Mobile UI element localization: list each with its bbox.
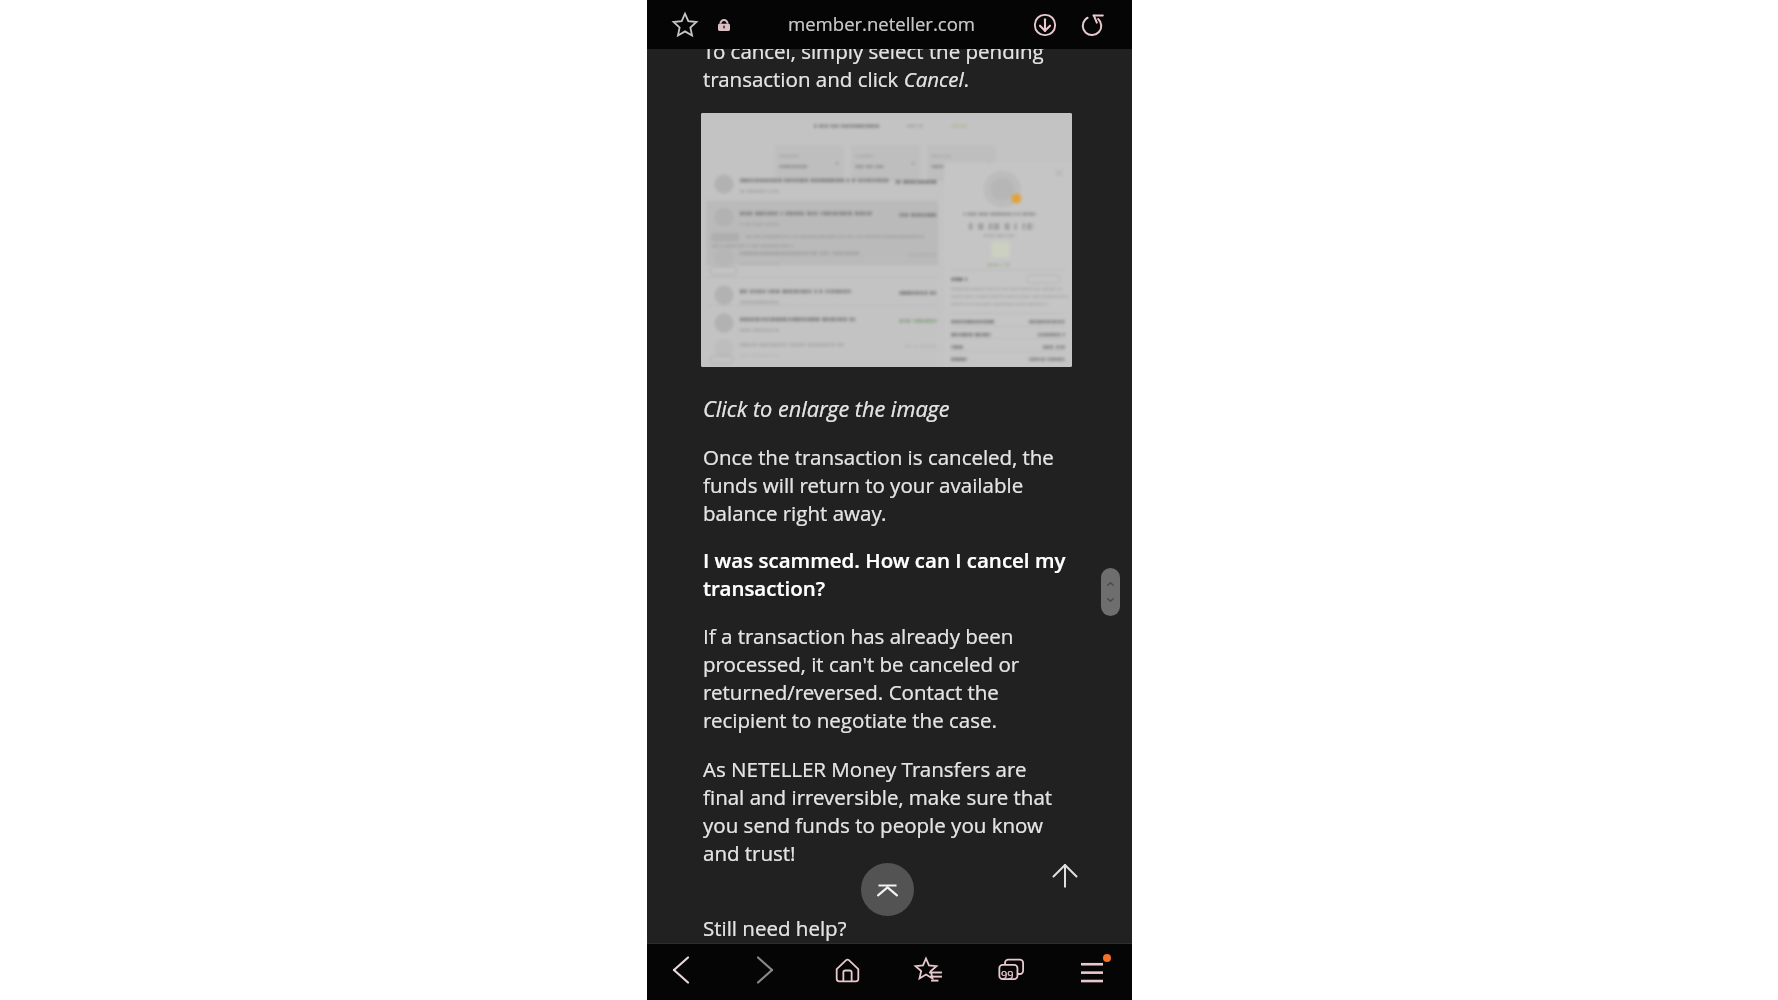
staticText: As NETELLER Money Transfers are final an…: [703, 755, 1053, 867]
staticText: Once the transaction is canceled, the fu…: [703, 443, 1054, 527]
staticText: 99: [1001, 967, 1014, 982]
staticText: Still need help?: [703, 914, 847, 942]
button[interactable]: Scroll to top: [1047, 858, 1083, 894]
button[interactable]: Reload: [1076, 9, 1108, 41]
staticText: I was scammed. How can I cancel my trans…: [703, 546, 1066, 602]
button[interactable]: Site security: [711, 12, 737, 38]
staticText: To cancel, simply select the pending tra…: [703, 37, 1044, 93]
button[interactable]: Back: [654, 943, 708, 997]
button[interactable]: Bookmarks: [901, 943, 955, 997]
button[interactable]: Home: [820, 943, 874, 997]
staticText: If a transaction has already been proces…: [703, 622, 1020, 734]
staticText: Click to enlarge the image: [703, 394, 950, 424]
button[interactable]: Screenshot of pending transaction: [701, 113, 1072, 367]
button[interactable]: Menu: [1065, 943, 1119, 997]
button[interactable]: Tabs: [984, 943, 1038, 997]
button[interactable]: Bookmark: [668, 8, 701, 41]
staticText: member.neteller.com: [788, 11, 976, 36]
button[interactable]: Download: [1029, 9, 1061, 41]
button[interactable]: Scrollbar: [1101, 568, 1120, 616]
button[interactable]: Collapse: [861, 863, 914, 916]
button[interactable]: Forward: [738, 943, 792, 997]
